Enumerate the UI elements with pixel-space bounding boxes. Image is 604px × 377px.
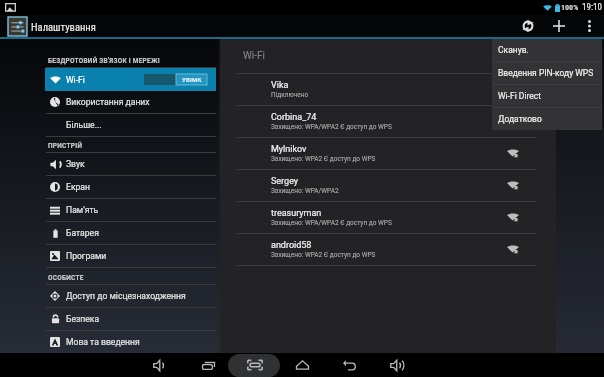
staticText: android58: [271, 240, 312, 251]
button[interactable]: Screenshot: [242, 353, 268, 377]
staticText: Налаштування: [31, 21, 96, 33]
button[interactable]: Vika: [220, 74, 556, 105]
button[interactable]: Пам'ять: [0, 199, 218, 221]
button[interactable]: Sergey: [220, 170, 556, 201]
staticText: Додатково: [498, 114, 542, 124]
staticText: Corbina_74: [271, 112, 317, 123]
button[interactable]: Scan: [511, 15, 545, 37]
staticText: Сканув.: [498, 45, 529, 55]
button[interactable]: Volume down: [146, 353, 172, 377]
button[interactable]: Введення PIN-коду WPS: [492, 62, 602, 84]
staticText: Sergey: [271, 176, 299, 187]
staticText: Захищено: WPA2 Є доступ до WPS: [271, 251, 376, 259]
staticText: treasuryman: [271, 208, 322, 219]
button[interactable]: Recents: [195, 353, 221, 377]
button[interactable]: Програми: [0, 245, 218, 267]
staticText: Підключено: [271, 91, 309, 99]
button[interactable]: Безпека: [0, 308, 218, 330]
button[interactable]: Corbina_74: [220, 106, 556, 137]
staticText: Пам'ять: [66, 205, 99, 215]
button[interactable]: Мова та введення: [0, 331, 218, 353]
staticText: Введення PIN-коду WPS: [498, 68, 594, 78]
staticText: БЕЗДРОТОВИЙ ЗВ'ЯЗОК І МЕРЕЖІ: [48, 57, 160, 65]
button[interactable]: Звук: [0, 153, 218, 175]
staticText: Більше...: [66, 120, 102, 130]
staticText: Wi-Fi: [66, 75, 85, 85]
button[interactable]: android58: [220, 234, 556, 265]
staticText: Wi-Fi: [243, 50, 266, 62]
button[interactable]: Back: [336, 353, 362, 377]
staticText: Захищено: WPA2 Є доступ до WPS: [271, 155, 376, 163]
staticText: ПРИСТРІЙ: [48, 142, 83, 150]
staticText: Захищено: WPA/WPA2: [271, 187, 339, 195]
button[interactable]: Volume up: [383, 353, 409, 377]
button[interactable]: Wi-Fi Direct: [492, 85, 602, 107]
staticText: Mylnikov: [271, 144, 307, 155]
staticText: Програми: [66, 251, 107, 261]
staticText: Доступ до місцезнаходження: [66, 291, 186, 301]
button[interactable]: Більше...: [0, 114, 218, 136]
button[interactable]: Mylnikov: [220, 138, 556, 169]
button[interactable]: treasuryman: [220, 202, 556, 233]
button[interactable]: Сканув.: [492, 39, 602, 61]
staticText: Безпека: [66, 314, 100, 324]
staticText: 19:10: [582, 2, 602, 13]
staticText: Захищено: WPA/WPA2 Є доступ до WPS: [271, 219, 392, 227]
button[interactable]: Додатково: [492, 108, 602, 130]
staticText: 100%: [561, 3, 579, 12]
button[interactable]: Add network: [542, 15, 576, 37]
staticText: Wi-Fi Direct: [498, 91, 542, 101]
staticText: Vika: [271, 80, 289, 91]
staticText: УВІМК: [182, 76, 202, 83]
staticText: Мова та введення: [66, 337, 140, 347]
button[interactable]: Використання даних: [0, 91, 218, 113]
button[interactable]: Доступ до місцезнаходження: [0, 285, 218, 307]
button[interactable]: Екран: [0, 176, 218, 198]
staticText: Захищено: WPA/WPA2 Є доступ до WPS: [271, 123, 392, 131]
staticText: Батарея: [66, 228, 99, 238]
staticText: ОСОБИСТЕ: [48, 274, 84, 282]
button[interactable]: Батарея: [0, 222, 218, 244]
staticText: Екран: [66, 182, 90, 192]
staticText: Звук: [66, 159, 85, 169]
staticText: Використання даних: [66, 97, 150, 107]
button[interactable]: Home: [289, 353, 315, 377]
button[interactable]: More options: [576, 15, 602, 37]
button[interactable]: Wi-Fi: [45, 68, 216, 91]
